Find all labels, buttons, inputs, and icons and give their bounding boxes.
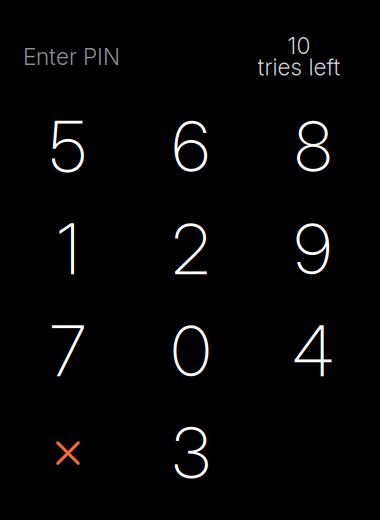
staticText: 0 <box>171 309 211 393</box>
button[interactable]: 2 <box>130 198 252 300</box>
button[interactable]: 4 <box>252 300 374 402</box>
staticText: 4 <box>292 309 333 393</box>
button[interactable]: 7 <box>7 300 129 402</box>
button[interactable]: Delete <box>7 401 129 503</box>
staticText: 10 <box>287 32 310 59</box>
button[interactable]: 3 <box>130 401 252 503</box>
staticText: tries left <box>257 53 340 81</box>
button[interactable]: 8 <box>252 95 374 197</box>
button[interactable]: 5 <box>7 95 129 197</box>
staticText: 8 <box>294 105 331 188</box>
button[interactable]: 9 <box>252 198 374 300</box>
button[interactable]: 1 <box>7 198 129 300</box>
button[interactable]: 0 <box>130 300 252 402</box>
staticText: 3 <box>172 411 210 494</box>
staticText: 6 <box>172 105 210 188</box>
staticText: 2 <box>172 207 210 291</box>
staticText: Enter PIN <box>23 43 120 70</box>
staticText: 1 <box>57 207 79 291</box>
staticText: 9 <box>294 207 332 291</box>
staticText: 5 <box>49 105 86 188</box>
staticText: 7 <box>50 309 86 393</box>
button[interactable]: 6 <box>130 95 252 197</box>
